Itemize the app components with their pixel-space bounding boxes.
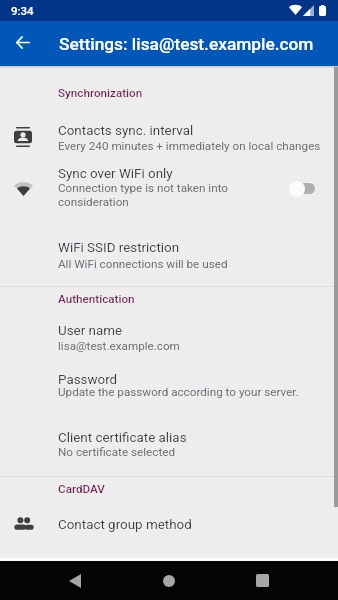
staticText: CardDAV (58, 482, 105, 496)
staticText: Settings: lisa@test.example.com (59, 34, 314, 54)
button[interactable] (0, 104, 338, 156)
staticText: Synchronization (58, 86, 143, 100)
staticText: lisa@test.example.com (58, 339, 180, 353)
staticText: Connection type is not taken into consid… (58, 181, 238, 209)
staticText: Update the password according to your se… (58, 385, 299, 399)
button[interactable] (0, 148, 338, 200)
button[interactable]: Navigate up (1, 21, 45, 69)
staticText: WiFi SSID restriction (58, 240, 180, 256)
button[interactable] (0, 353, 338, 405)
button[interactable]: Home (151, 561, 187, 600)
button[interactable]: Back (57, 561, 93, 600)
staticText: Contacts sync. interval (58, 123, 194, 139)
staticText: Client certificate alias (58, 430, 187, 446)
staticText: Sync over WiFi only (58, 166, 173, 182)
staticText: Authentication (58, 292, 135, 306)
staticText: Every 240 minutes + immediately on local… (58, 139, 321, 153)
button[interactable]: Sync over WiFi only toggle (289, 180, 315, 197)
staticText: Contact group method (58, 517, 192, 533)
button[interactable] (0, 222, 338, 274)
button[interactable] (0, 504, 338, 544)
staticText: Password (58, 372, 118, 388)
button[interactable] (0, 305, 338, 357)
staticText: No certificate selected (58, 445, 176, 459)
staticText: 9:34 (11, 4, 34, 17)
button[interactable]: Recent apps (244, 561, 280, 600)
staticText: All WiFi connections will be used (58, 257, 228, 271)
staticText: User name (58, 323, 123, 339)
button[interactable] (0, 412, 338, 464)
